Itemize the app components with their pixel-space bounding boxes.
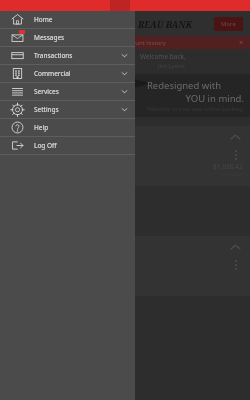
staticText: Redesigned with: [146, 79, 221, 92]
staticText: Welcome back,: [140, 52, 186, 61]
button[interactable]: $1,938.42: [0, 126, 250, 186]
staticText: Home: [34, 15, 53, 24]
staticText: ×: [239, 38, 244, 48]
staticText: Welcome to your new online banking.: [146, 105, 244, 112]
staticText: Log Off: [34, 141, 57, 150]
button[interactable]: Messages: [0, 29, 135, 46]
staticText: Transactions: [34, 51, 73, 60]
button[interactable]: More: [214, 17, 243, 31]
button[interactable]: Settings: [0, 101, 135, 118]
staticText: Settings: [34, 105, 59, 114]
staticText: $1,938.42: [213, 162, 243, 171]
staticText: Jim Lyons: [158, 62, 185, 70]
button[interactable]: Transactions: [0, 47, 135, 64]
button[interactable]: Commercial: [0, 65, 135, 82]
staticText: Account history: [122, 39, 166, 47]
button[interactable]: Log Off: [0, 137, 135, 154]
staticText: Services: [34, 87, 59, 96]
staticText: More: [221, 20, 236, 28]
button[interactable]: Help: [0, 119, 135, 136]
button[interactable]: Home: [0, 11, 135, 28]
staticText: REAU BANK: [138, 18, 193, 30]
button[interactable]: Services: [0, 83, 135, 100]
button[interactable]: Account history: [0, 36, 250, 49]
staticText: Messages: [34, 33, 65, 42]
staticText: YOU in mind.: [185, 92, 244, 105]
button[interactable]: [0, 236, 250, 296]
staticText: Commercial: [34, 69, 71, 78]
staticText: Help: [34, 123, 49, 132]
